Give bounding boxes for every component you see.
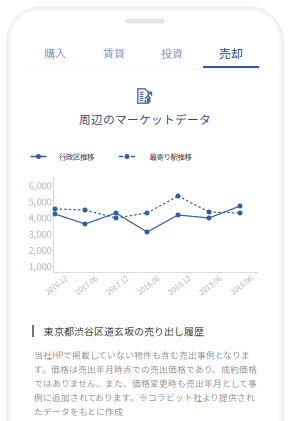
- button[interactable]: 購入: [27, 38, 83, 68]
- staticText: 2019.06: [228, 280, 254, 290]
- staticText: 2,000: [28, 243, 51, 257]
- staticText: 5,000: [28, 194, 51, 208]
- staticText: 2016.12: [43, 280, 69, 290]
- staticText: 購入: [44, 45, 66, 61]
- staticText: 2017.12: [104, 280, 130, 290]
- staticText: 投資: [161, 45, 183, 61]
- staticText: 1,000: [28, 259, 51, 273]
- staticText: 売却: [219, 44, 243, 61]
- staticText: 6,000: [28, 178, 51, 192]
- button[interactable]: 売却: [203, 38, 259, 68]
- staticText: 2019.06: [197, 280, 223, 290]
- staticText: 最寄り駅推移: [149, 151, 191, 162]
- staticText: 3,000: [28, 227, 51, 240]
- staticText: 4,000: [28, 210, 51, 224]
- staticText: 当社HPで掲載していない物件も含む売出事例となります。価格は売出年月時点での売出…: [34, 348, 257, 417]
- staticText: 2017.06: [73, 280, 99, 290]
- staticText: 行政区推移: [59, 151, 94, 162]
- button[interactable]: 賃貸: [86, 38, 142, 68]
- button[interactable]: 投資: [144, 38, 200, 68]
- staticText: 周辺のマーケットデータ: [79, 110, 211, 127]
- staticText: 2018.06: [135, 280, 161, 290]
- staticText: 2018.12: [166, 280, 192, 290]
- staticText: 東京都渋谷区道玄坂の売り出し履歴: [44, 324, 204, 338]
- staticText: 賃貸: [103, 45, 125, 61]
